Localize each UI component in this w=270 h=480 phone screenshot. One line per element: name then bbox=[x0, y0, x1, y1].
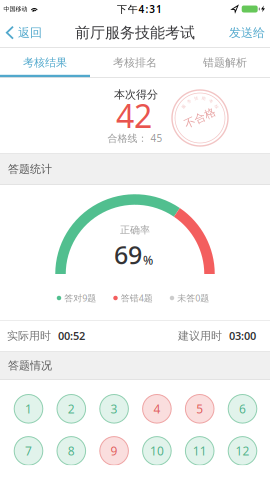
button[interactable]: 返回 bbox=[0, 25, 42, 40]
staticText: 不合格 bbox=[183, 111, 216, 125]
button[interactable]: 11 bbox=[185, 437, 214, 465]
staticText: 考核结果 bbox=[23, 56, 67, 69]
staticText: 12 bbox=[235, 443, 249, 459]
staticText: 6 bbox=[239, 401, 246, 417]
staticText: 2 bbox=[68, 401, 75, 417]
staticText: 9 bbox=[111, 443, 118, 459]
staticText: 发送给 bbox=[229, 25, 265, 40]
button[interactable]: 5 bbox=[185, 394, 214, 423]
staticText: 下午4:31 bbox=[117, 2, 162, 16]
staticText: 答题情况 bbox=[8, 359, 52, 372]
staticText: 技 bbox=[194, 96, 198, 101]
staticText: 能 bbox=[202, 96, 206, 101]
staticText: 答错4题 bbox=[121, 292, 153, 304]
staticText: 69 bbox=[114, 238, 142, 271]
button[interactable]: 9 bbox=[100, 437, 128, 465]
staticText: 7 bbox=[25, 443, 32, 459]
staticText: 42 bbox=[116, 94, 152, 137]
staticText: 答对9题 bbox=[64, 292, 96, 304]
button[interactable]: 1 bbox=[14, 394, 43, 423]
staticText: 核 bbox=[214, 104, 218, 109]
button[interactable]: 10 bbox=[143, 437, 171, 465]
staticText: 10 bbox=[150, 443, 164, 459]
button[interactable]: 3 bbox=[100, 394, 128, 423]
staticText: 前厅服务技能考试 bbox=[75, 23, 195, 42]
button[interactable]: 4 bbox=[143, 394, 171, 423]
staticText: 03:00 bbox=[229, 328, 256, 343]
staticText: % bbox=[143, 252, 153, 268]
staticText: 合格线： 45 bbox=[107, 131, 162, 145]
button[interactable]: 发送给 bbox=[229, 25, 270, 40]
staticText: 返回 bbox=[18, 25, 42, 40]
staticText: 答题统计 bbox=[8, 162, 52, 176]
staticText: 建议用时 bbox=[178, 329, 222, 343]
staticText: 1 bbox=[25, 401, 32, 417]
staticText: 5 bbox=[196, 401, 203, 417]
button[interactable]: 考核结果 bbox=[0, 48, 90, 77]
staticText: 未答0题 bbox=[177, 292, 209, 304]
button[interactable]: 12 bbox=[228, 437, 257, 465]
staticText: 00:52 bbox=[58, 328, 85, 343]
staticText: 本次得分 bbox=[114, 88, 158, 101]
staticText: 11 bbox=[193, 443, 207, 459]
staticText: 正确率 bbox=[120, 224, 150, 236]
button[interactable]: 考核排名 bbox=[90, 48, 180, 77]
staticText: 服 bbox=[182, 104, 186, 109]
staticText: 错题解析 bbox=[203, 56, 247, 69]
button[interactable]: 7 bbox=[14, 437, 43, 465]
button[interactable]: 6 bbox=[228, 394, 257, 423]
button[interactable]: 8 bbox=[57, 437, 86, 465]
button[interactable]: 2 bbox=[57, 394, 86, 423]
staticText: 考核排名 bbox=[113, 56, 157, 69]
staticText: 务 bbox=[187, 99, 191, 104]
staticText: 中国移动 bbox=[3, 5, 27, 13]
staticText: 实际用时 bbox=[7, 329, 51, 343]
button[interactable]: 错题解析 bbox=[180, 48, 270, 77]
staticText: 考 bbox=[209, 99, 213, 104]
staticText: 3 bbox=[111, 401, 118, 417]
staticText: 8 bbox=[68, 443, 75, 459]
staticText: 4 bbox=[153, 401, 160, 417]
